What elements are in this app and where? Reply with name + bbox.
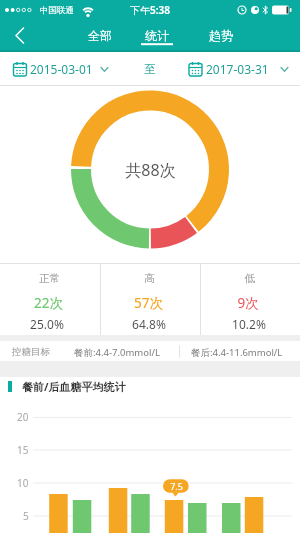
staticText: 共88次 — [125, 159, 176, 181]
staticText: 餐前/后血糖平均统计 — [22, 379, 126, 394]
button[interactable]: 全部 — [72, 20, 128, 51]
button[interactable] — [8, 24, 32, 48]
staticText: 餐前:4.4-7.0mmol/L — [74, 346, 160, 359]
staticText: 中国联通 — [40, 5, 74, 16]
staticText: 趋势 — [209, 28, 233, 43]
button[interactable]: 趋势 — [193, 20, 249, 51]
staticText: 控糖目标 — [12, 346, 50, 358]
staticText: 9次 — [237, 294, 259, 312]
staticText: 25.0% — [30, 316, 64, 332]
staticText: 统计 — [145, 28, 169, 43]
staticText: 10.2% — [232, 316, 266, 332]
staticText: 餐后:4.4-11.6mmol/L — [191, 346, 283, 359]
button[interactable] — [11, 56, 111, 82]
staticText: 10 — [17, 476, 29, 490]
staticText: 下午5:38 — [130, 3, 170, 17]
button[interactable] — [186, 56, 290, 82]
staticText: 7.5 — [170, 480, 183, 492]
staticText: 64.8% — [132, 316, 166, 332]
staticText: 15 — [17, 443, 29, 457]
staticText: 全部 — [88, 28, 112, 43]
staticText: 2017-03-31 — [206, 61, 269, 77]
staticText: 2015-03-01 — [30, 61, 93, 77]
staticText: 22次 — [34, 294, 63, 312]
staticText: 正常 — [39, 272, 60, 285]
staticText: 20 — [17, 410, 29, 424]
staticText: 5 — [23, 509, 29, 523]
staticText: 57次 — [134, 294, 163, 312]
staticText: 高 — [144, 272, 155, 285]
button[interactable]: 统计 — [129, 20, 185, 51]
staticText: 至 — [144, 62, 156, 76]
staticText: 低 — [244, 272, 255, 285]
